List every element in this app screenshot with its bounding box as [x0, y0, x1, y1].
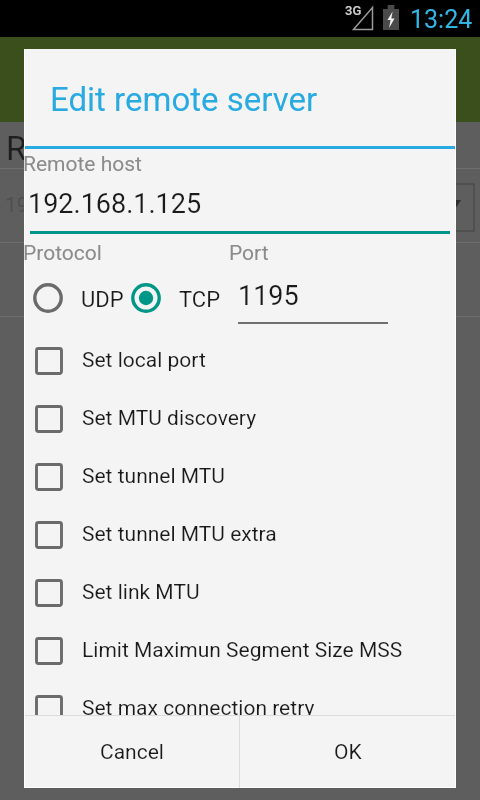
staticText: Edit remote server	[50, 80, 318, 119]
button[interactable]: UDP	[28, 278, 124, 318]
button[interactable]: Set local port	[24, 338, 456, 383]
button[interactable]: TCP	[126, 278, 221, 318]
button[interactable]: Set MTU discovery	[24, 396, 456, 441]
button[interactable]: OK	[240, 716, 456, 788]
staticText: 192.168.1.125	[28, 188, 202, 220]
staticText: Set local port	[82, 348, 206, 373]
staticText: Set link MTU	[82, 580, 200, 605]
staticText: Port	[229, 241, 269, 266]
staticText: Set max connection retry	[82, 696, 315, 715]
staticText: Set MTU discovery	[82, 406, 257, 431]
staticText: OK	[334, 740, 362, 765]
staticText: Remote host	[23, 152, 142, 177]
staticText: 13:24	[410, 5, 473, 34]
staticText: Limit Maximun Segment Size MSS	[82, 638, 403, 663]
staticText: Protocol	[23, 241, 102, 266]
staticText: UDP	[81, 287, 124, 313]
button[interactable]: Set max connection retry	[24, 686, 456, 715]
staticText: Set tunnel MTU extra	[82, 522, 277, 547]
staticText: Set tunnel MTU	[82, 464, 225, 489]
staticText: 1195	[238, 280, 299, 312]
button[interactable]: Limit Maximun Segment Size MSS	[24, 628, 456, 673]
staticText: 3G	[345, 3, 362, 18]
button[interactable]: Cancel	[24, 716, 239, 788]
staticText: Cancel	[100, 740, 164, 765]
staticText: Remote servers	[6, 129, 236, 168]
staticText: 192.168.1.125	[5, 193, 140, 218]
button[interactable]: Set link MTU	[24, 570, 456, 615]
staticText: TCP	[179, 287, 221, 313]
button[interactable]: Set tunnel MTU extra	[24, 512, 456, 557]
button[interactable]: Set tunnel MTU	[24, 454, 456, 499]
